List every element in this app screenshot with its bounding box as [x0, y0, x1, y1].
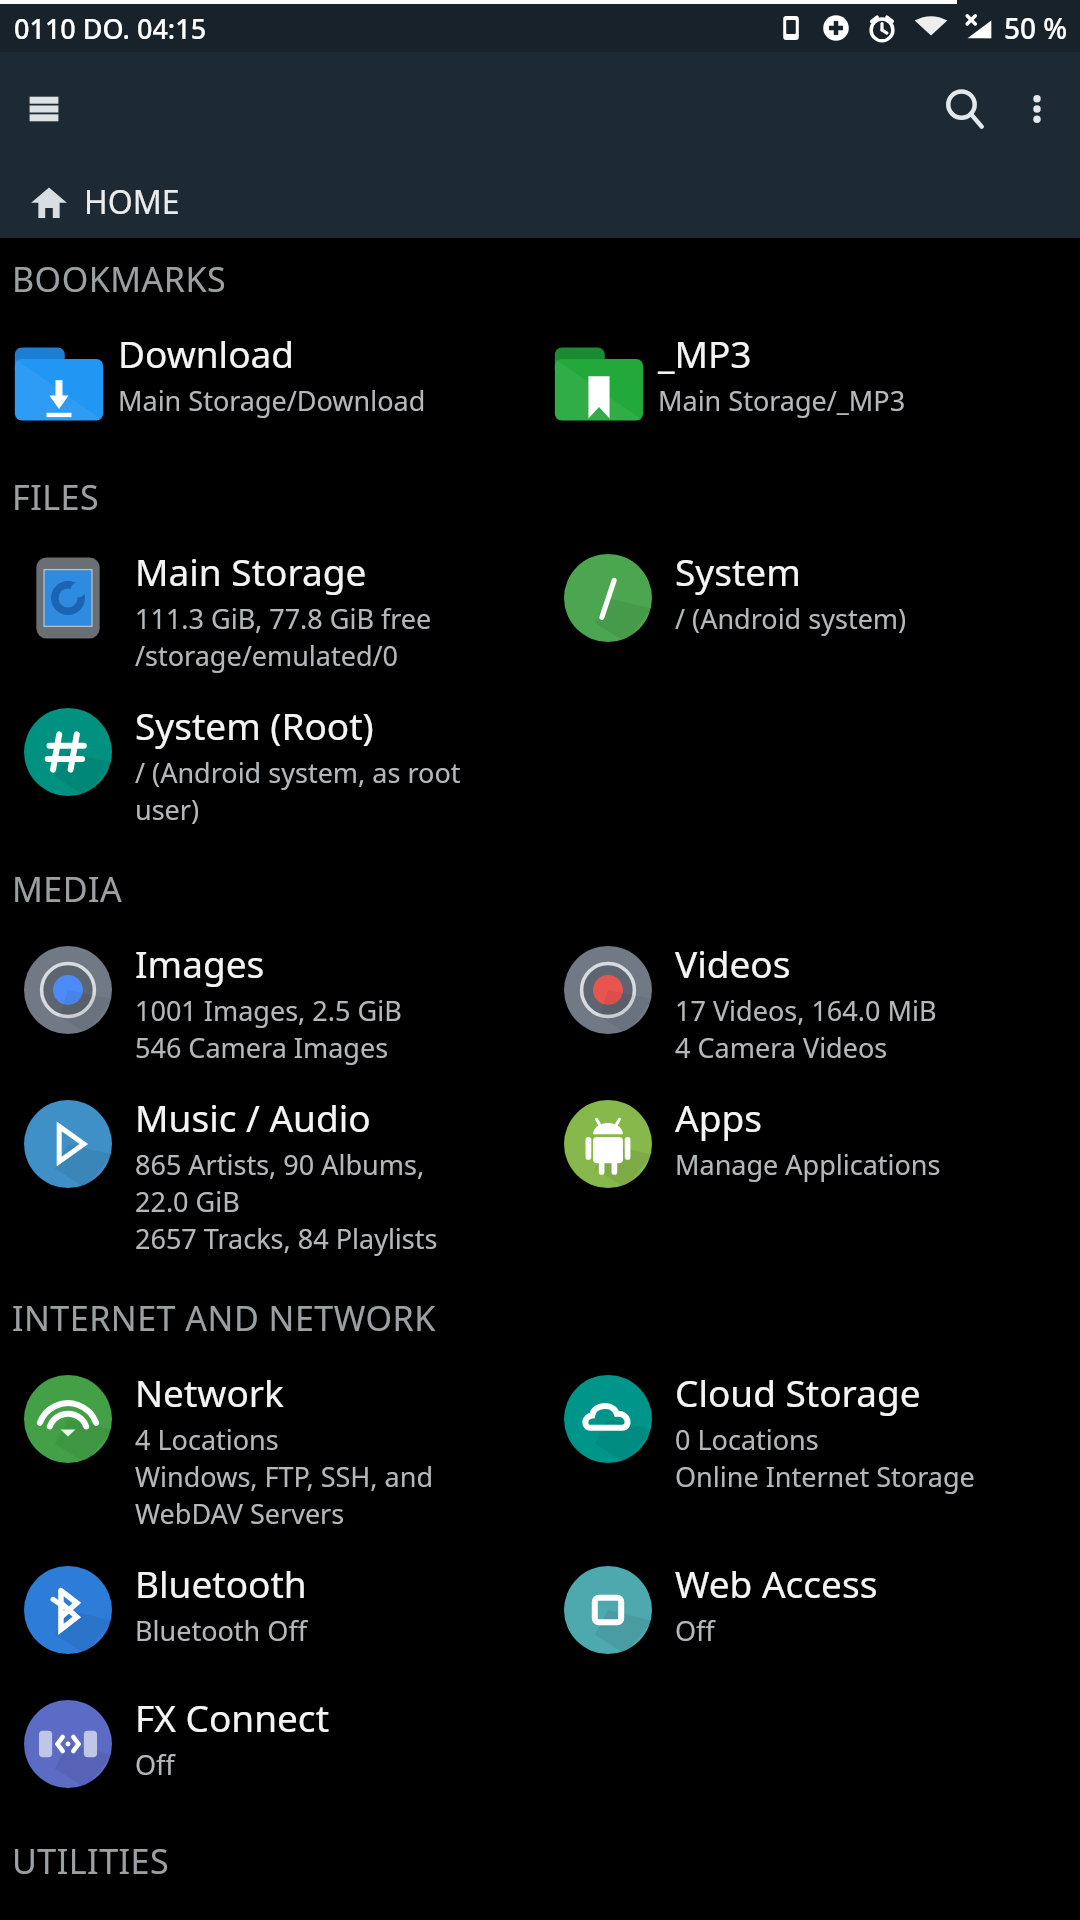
staticText: FILES — [12, 474, 100, 520]
staticText: 17 Videos, 164.0 MiB — [675, 992, 937, 1029]
staticText: WebDAV Servers — [135, 1495, 345, 1532]
staticText: Windows, FTP, SSH, and — [135, 1458, 434, 1495]
staticText: Download — [118, 328, 295, 378]
staticText: MEDIA — [12, 866, 123, 912]
staticText: 865 Artists, 90 Albums, — [135, 1146, 425, 1183]
button[interactable]: Open navigation menu — [8, 73, 80, 145]
button[interactable]: Download — [0, 324, 540, 440]
staticText: 111.3 GiB, 77.8 GiB free — [135, 600, 432, 637]
staticText: 4 Locations — [135, 1421, 279, 1458]
button[interactable]: System — [540, 542, 1080, 658]
staticText: HOME — [84, 180, 180, 224]
staticText: BOOKMARKS — [12, 256, 227, 302]
staticText: 546 Camera Images — [135, 1029, 389, 1066]
button[interactable]: HOME — [0, 166, 1080, 238]
staticText: 22.0 GiB — [135, 1183, 240, 1220]
button[interactable]: Music / Audio — [0, 1088, 540, 1261]
staticText: FX Connect — [135, 1692, 329, 1742]
button[interactable]: More options — [1006, 72, 1068, 146]
button[interactable]: Apps — [540, 1088, 1080, 1204]
staticText: 4 Camera Videos — [675, 1029, 888, 1066]
button[interactable]: FX Connect — [0, 1688, 540, 1804]
staticText: Online Internet Storage — [675, 1458, 975, 1495]
staticText: Music / Audio — [135, 1092, 371, 1142]
button[interactable]: Web Access — [540, 1554, 1080, 1670]
staticText: UTILITIES — [12, 1838, 170, 1884]
staticText: Main Storage/_MP3 — [658, 382, 906, 419]
staticText: Bluetooth — [135, 1558, 307, 1608]
staticText: 50 % — [1004, 9, 1068, 47]
staticText: Manage Applications — [675, 1146, 941, 1183]
staticText: Web Access — [675, 1558, 878, 1608]
button[interactable]: System (Root) — [0, 696, 540, 832]
staticText: _MP3 — [658, 328, 752, 378]
button[interactable]: Search — [924, 68, 1006, 150]
button[interactable]: Videos — [540, 934, 1080, 1070]
staticText: Network — [135, 1367, 284, 1417]
staticText: / (Android system) — [675, 600, 907, 637]
staticText: /storage/emulated/0 — [135, 637, 399, 674]
staticText: System — [675, 546, 801, 596]
staticText: Off — [135, 1746, 175, 1783]
staticText: System (Root) — [135, 700, 374, 750]
staticText: / (Android system, as root — [135, 754, 461, 791]
button[interactable]: Main Storage — [0, 542, 540, 678]
staticText: Main Storage — [135, 546, 367, 596]
staticText: Cloud Storage — [675, 1367, 921, 1417]
staticText: 0110 DO. 04:15 — [14, 10, 207, 47]
button[interactable]: _MP3 — [540, 324, 1080, 440]
staticText: Off — [675, 1612, 715, 1649]
staticText: 1001 Images, 2.5 GiB — [135, 992, 402, 1029]
staticText: Apps — [675, 1092, 762, 1142]
button[interactable]: Cloud Storage — [540, 1363, 1080, 1499]
staticText: 2657 Tracks, 84 Playlists — [135, 1220, 438, 1257]
button[interactable]: Bluetooth — [0, 1554, 540, 1670]
staticText: Videos — [675, 938, 791, 988]
staticText: INTERNET AND NETWORK — [12, 1295, 436, 1341]
button[interactable]: Network — [0, 1363, 540, 1536]
staticText: user) — [135, 791, 200, 828]
staticText: Bluetooth Off — [135, 1612, 307, 1649]
staticText: Images — [135, 938, 265, 988]
staticText: 0 Locations — [675, 1421, 819, 1458]
staticText: Main Storage/Download — [118, 382, 426, 419]
button[interactable]: Images — [0, 934, 540, 1070]
